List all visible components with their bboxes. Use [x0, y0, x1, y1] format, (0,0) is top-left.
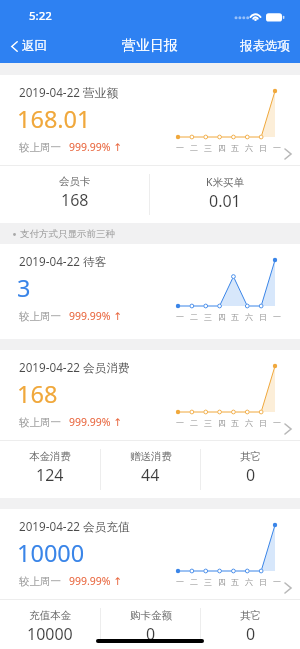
staticText: K米买单 [206, 175, 244, 189]
staticText: 日 [257, 143, 269, 153]
staticText: 五 [229, 577, 241, 587]
staticText: 一 [271, 577, 283, 587]
staticText: 较上周一 [19, 141, 61, 154]
staticText: 返回 [22, 38, 47, 54]
other: 查看详情 [284, 423, 292, 435]
staticText: 10000 [27, 623, 73, 645]
staticText: 10000 [17, 537, 85, 569]
other: 查看详情 [284, 148, 292, 160]
staticText: 日 [257, 312, 269, 322]
staticText: 0.01 [209, 190, 241, 212]
staticText: 四 [216, 418, 228, 428]
staticText: 168 [61, 189, 89, 211]
staticText: 三 [202, 577, 214, 587]
staticText: 六 [243, 143, 255, 153]
staticText: 一 [271, 143, 283, 153]
button[interactable]: 充值本金 [0, 600, 100, 649]
staticText: 日 [257, 577, 269, 587]
staticText: 二 [188, 418, 200, 428]
staticText: 四 [216, 312, 228, 322]
button[interactable]: 其它 [201, 600, 300, 649]
staticText: 一 [174, 312, 186, 322]
staticText: 五 [229, 143, 241, 153]
staticText: 0 [146, 623, 156, 645]
staticText: 999.99% ↑ [69, 140, 123, 154]
button[interactable]: 赠送消费 [101, 441, 200, 498]
staticText: 三 [202, 143, 214, 153]
button[interactable]: 报表选项 [230, 30, 300, 62]
staticText: 支付方式只显示前三种 [20, 228, 115, 240]
staticText: 168.01 [17, 103, 91, 135]
staticText: 六 [243, 577, 255, 587]
other: 查看详情 [284, 582, 292, 594]
staticText: 2019-04-22 会员消费 [19, 359, 130, 375]
staticText: 赠送消费 [130, 450, 172, 463]
staticText: 2019-04-22 会员充值 [19, 518, 130, 534]
staticText: 充值本金 [29, 609, 71, 622]
staticText: 一 [174, 577, 186, 587]
staticText: 5:22 [29, 8, 52, 24]
button[interactable]: 本金消费 [0, 441, 100, 498]
staticText: 较上周一 [19, 416, 61, 429]
staticText: 124 [36, 464, 64, 486]
staticText: 六 [243, 312, 255, 322]
staticText: 0 [246, 623, 256, 645]
staticText: 较上周一 [19, 310, 61, 323]
button[interactable]: 2019-04-22 待客 [0, 244, 300, 339]
staticText: 999.99% ↑ [69, 309, 123, 323]
staticText: 会员卡 [59, 175, 91, 188]
staticText: 三 [202, 312, 214, 322]
staticText: 六 [243, 418, 255, 428]
staticText: 日 [257, 418, 269, 428]
button[interactable]: 购卡金额 [101, 600, 200, 649]
staticText: 168 [17, 378, 58, 410]
staticText: 四 [216, 577, 228, 587]
staticText: 其它 [240, 450, 261, 463]
button[interactable]: 2019-04-22 会员消费 [0, 350, 300, 498]
button[interactable]: 其它 [201, 441, 300, 498]
button[interactable]: K米买单 [150, 166, 300, 223]
staticText: 2019-04-22 营业额 [19, 84, 119, 100]
staticText: 五 [229, 418, 241, 428]
button[interactable]: 2019-04-22 会员充值 [0, 509, 300, 649]
staticText: 本金消费 [29, 450, 71, 463]
staticText: 999.99% ↑ [69, 415, 123, 429]
staticText: 一 [271, 418, 283, 428]
staticText: 44 [141, 464, 160, 486]
staticText: 2019-04-22 待客 [19, 253, 107, 269]
staticText: 三 [202, 418, 214, 428]
staticText: 3 [17, 272, 31, 304]
staticText: 二 [188, 577, 200, 587]
staticText: 五 [229, 312, 241, 322]
staticText: 一 [174, 143, 186, 153]
staticText: 二 [188, 143, 200, 153]
button[interactable]: 会员卡 [0, 166, 149, 223]
staticText: 0 [246, 464, 256, 486]
staticText: 购卡金额 [130, 609, 172, 622]
staticText: 较上周一 [19, 575, 61, 588]
button[interactable]: 2019-04-22 营业额 [0, 75, 300, 223]
staticText: 一 [271, 312, 283, 322]
staticText: 其它 [240, 609, 261, 622]
staticText: 二 [188, 312, 200, 322]
button[interactable]: 返回 [0, 32, 57, 60]
staticText: 四 [216, 143, 228, 153]
staticText: 营业日报 [122, 37, 178, 55]
staticText: 999.99% ↑ [69, 574, 123, 588]
staticText: 一 [174, 418, 186, 428]
